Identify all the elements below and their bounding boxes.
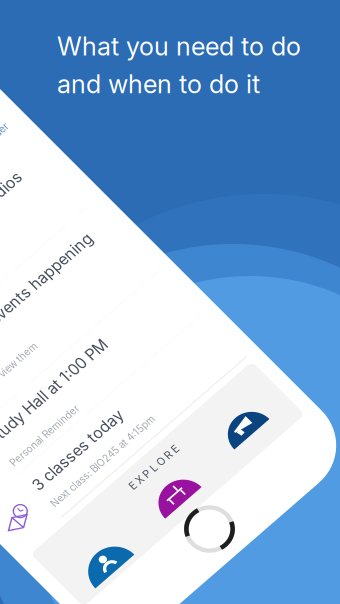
staticText: and when to do it [57, 69, 260, 99]
staticText: Reminder [0, 369, 48, 383]
staticText: There are 5 events happening [0, 527, 24, 549]
button[interactable]: Welcome to Campus Studios [0, 405, 54, 510]
button[interactable]: There are 5 events happening [0, 510, 54, 604]
staticText: Welcome to Campus Studios [0, 419, 17, 441]
staticText: What you need to do [57, 31, 301, 62]
